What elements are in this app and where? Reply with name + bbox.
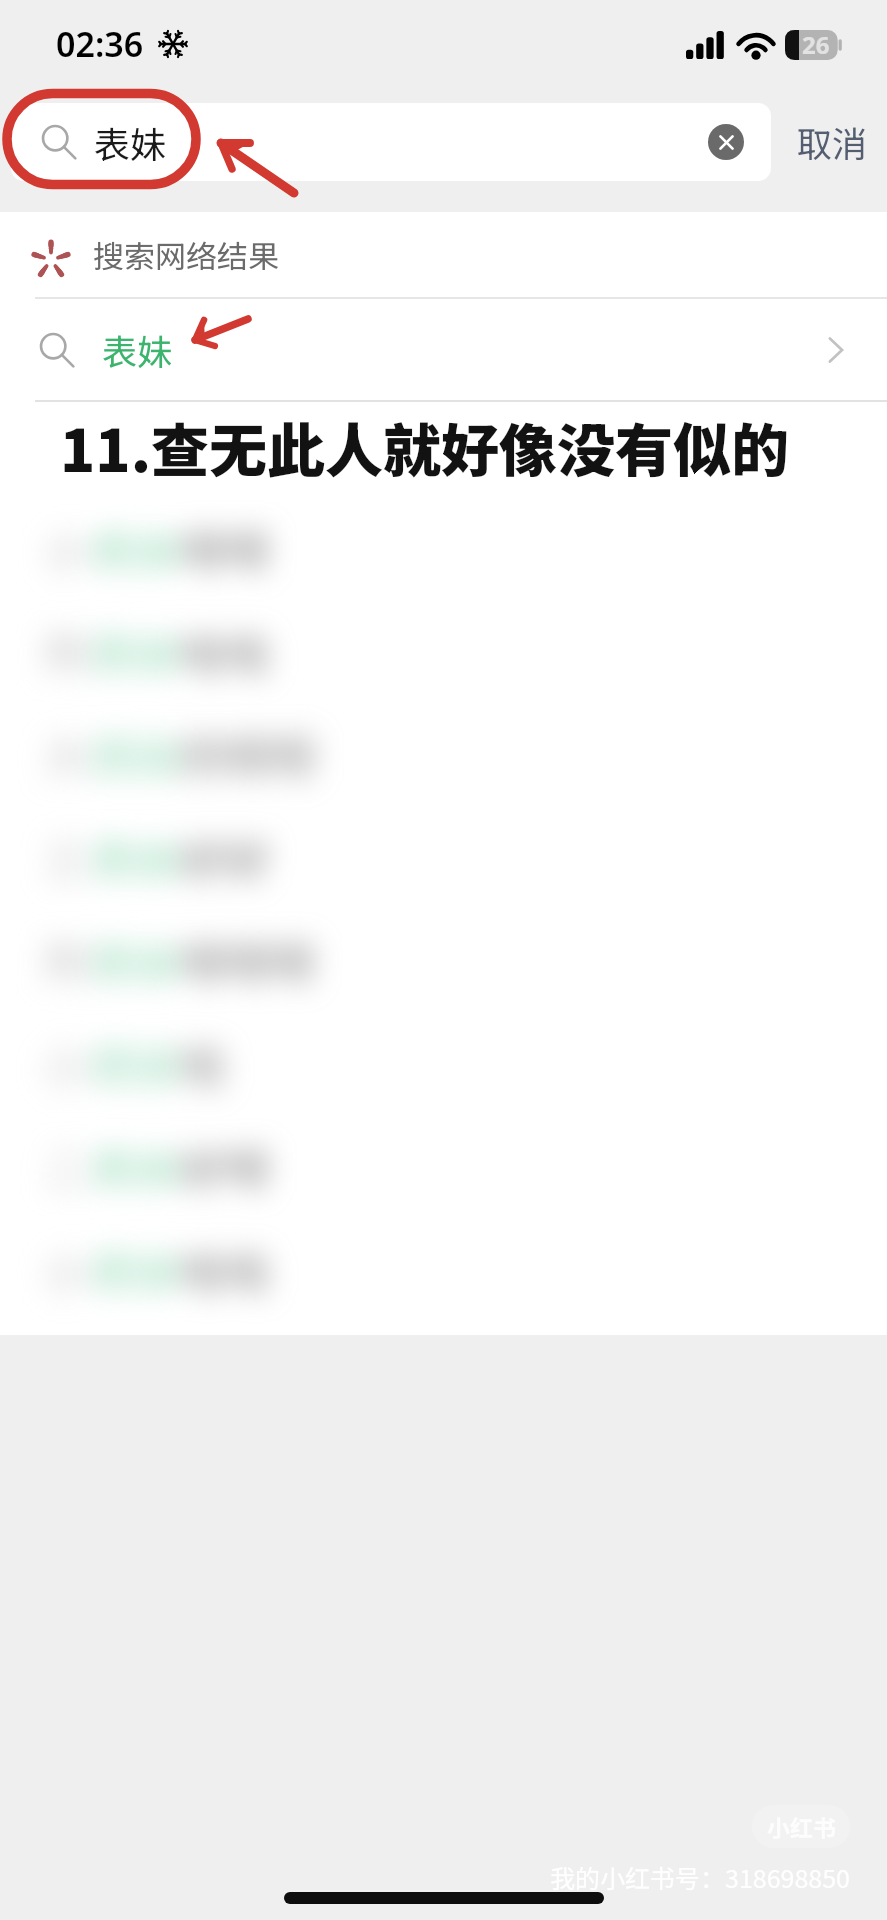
staticText: 02:36 [56,21,144,67]
staticText: 小红书 [767,1810,836,1843]
staticText: 表妹 [90,516,181,581]
staticText: 表妹 [90,722,181,787]
staticText: 二 [44,1134,90,1199]
button[interactable]: 表妹 [0,299,887,400]
staticText: 哈 [181,1031,227,1096]
staticText: 表妹 [90,1134,181,1199]
staticText: 好呀 [181,1134,272,1199]
button[interactable]: 大 [0,703,887,806]
staticText: 我的小红书号：318698850 [550,1859,850,1895]
staticText: 阿 [44,928,90,993]
staticText: 大 [44,722,90,787]
staticText: 取消 [797,116,868,167]
staticText: 表妹 [90,619,181,684]
button[interactable]: 搜索网络结果 [0,212,887,297]
staticText: 11.查无此人就好像没有似的 [60,405,790,489]
staticText: 三 [44,825,90,890]
staticText: 表妹 [102,324,173,375]
button[interactable]: 取消 [771,102,887,181]
staticText: 表妹 [94,116,167,168]
button[interactable]: 阿 [0,600,887,703]
staticText: 哈哈 [181,619,272,684]
staticText: 26 [802,28,830,61]
button[interactable]: 小 [0,1012,887,1115]
button[interactable]: Clear text [708,124,744,160]
staticText: 表妹 [90,1237,181,1302]
staticText: 哈哈 [181,1237,272,1302]
button[interactable]: 阿 [0,909,887,1012]
staticText: 好好 [181,825,272,890]
staticText: 呀呀 [181,516,272,581]
staticText: 的呀呀 [181,722,317,787]
staticText: 搜索网络结果 [93,232,279,277]
button[interactable]: 表妹 [11,103,771,181]
staticText: 表妹 [90,825,181,890]
staticText: 小 [44,1031,90,1096]
button[interactable]: 小 [0,497,887,600]
staticText: 阿 [44,619,90,684]
staticText: 呀呀呀 [181,928,317,993]
staticText: 小 [44,516,90,581]
staticText: 表妹 [90,928,181,993]
staticText: 表妹 [90,1031,181,1096]
button[interactable]: 小 [0,1218,887,1321]
staticText: 小 [44,1237,90,1302]
button[interactable]: 二 [0,1115,887,1218]
button[interactable]: 三 [0,806,887,909]
